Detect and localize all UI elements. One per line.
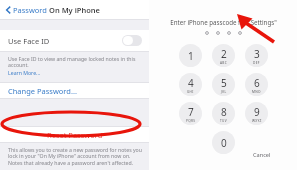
button[interactable]: Cancel bbox=[251, 149, 273, 161]
staticText: GHI bbox=[187, 90, 194, 94]
button[interactable]: 7 bbox=[179, 102, 202, 125]
button[interactable]: Use Face ID bbox=[0, 30, 149, 51]
button[interactable]: Use Face ID toggle, off bbox=[122, 35, 142, 46]
staticText: 1 bbox=[188, 49, 194, 63]
staticText: 0 bbox=[221, 136, 227, 150]
button[interactable]: Learn More... bbox=[8, 69, 41, 76]
staticText: Enter iPhone passcode for "Settings" bbox=[170, 18, 277, 26]
button[interactable]: Change Password... bbox=[0, 83, 149, 98]
staticText: On My iPhone bbox=[49, 5, 100, 15]
staticText: Use Face ID bbox=[8, 36, 50, 46]
staticText: Change Password... bbox=[8, 86, 77, 96]
staticText: 7 bbox=[188, 105, 194, 119]
staticText: 2 bbox=[221, 47, 227, 61]
staticText: WXYZ bbox=[252, 119, 262, 123]
button[interactable]: Reset Password bbox=[0, 127, 149, 142]
button[interactable]: 5 bbox=[212, 73, 235, 96]
staticText: 5 bbox=[221, 76, 227, 90]
button[interactable]: 8 bbox=[212, 102, 235, 125]
button[interactable]: 3 bbox=[245, 44, 268, 67]
staticText: Password bbox=[13, 5, 47, 15]
staticText: 3 bbox=[254, 47, 260, 61]
staticText: TUV bbox=[220, 119, 227, 123]
staticText: 6 bbox=[254, 76, 260, 90]
staticText: JKL bbox=[221, 90, 227, 94]
button[interactable]: 4 bbox=[179, 73, 202, 96]
staticText: ABC bbox=[220, 61, 228, 65]
button[interactable]: 0 bbox=[212, 131, 235, 154]
staticText: DEF bbox=[253, 61, 260, 65]
staticText: 9 bbox=[254, 105, 260, 119]
staticText: Use Face ID to view and manage locked no… bbox=[8, 55, 143, 69]
staticText: MNO bbox=[252, 90, 261, 94]
staticText: This allows you to create a new password… bbox=[8, 146, 143, 167]
staticText: 8 bbox=[221, 105, 227, 119]
button[interactable]: 6 bbox=[245, 73, 268, 96]
button[interactable]: Password bbox=[4, 3, 49, 17]
button[interactable]: 2 bbox=[212, 44, 235, 67]
staticText: Reset Password bbox=[47, 130, 103, 140]
staticText: PQRS bbox=[186, 119, 196, 123]
button[interactable]: 9 bbox=[245, 102, 268, 125]
button[interactable]: 1 bbox=[179, 44, 202, 67]
staticText: 4 bbox=[188, 76, 194, 90]
